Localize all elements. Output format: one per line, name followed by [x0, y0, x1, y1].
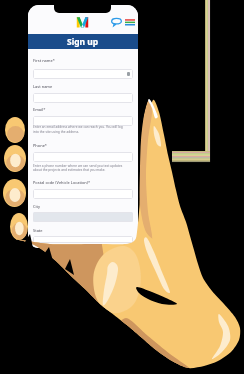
staticText: Enter a phone number where we can send y…	[33, 164, 123, 168]
button[interactable]	[33, 236, 133, 243]
staticText: City	[33, 204, 41, 209]
staticText: Phone*	[33, 143, 47, 148]
staticText: Enter an email address where we can reac…	[33, 125, 123, 129]
staticText: Postal code (Vehicle Location)*	[33, 180, 91, 185]
button[interactable]	[33, 93, 133, 103]
staticText: Email*	[33, 107, 46, 112]
staticText: State	[33, 228, 43, 233]
staticText: Last name	[33, 84, 53, 89]
staticText: First name*	[33, 58, 55, 63]
button[interactable]: Chat	[111, 16, 122, 27]
button[interactable]: Sign up	[28, 34, 138, 49]
staticText: into the site using the address.	[33, 130, 80, 134]
staticText: about the projects and estimates that yo…	[33, 168, 106, 172]
button[interactable]: Menu	[125, 17, 135, 27]
staticText: Sign up	[67, 36, 99, 48]
button[interactable]	[33, 152, 133, 162]
button[interactable]	[33, 116, 133, 126]
button[interactable]	[33, 189, 133, 199]
button[interactable]	[33, 69, 133, 79]
